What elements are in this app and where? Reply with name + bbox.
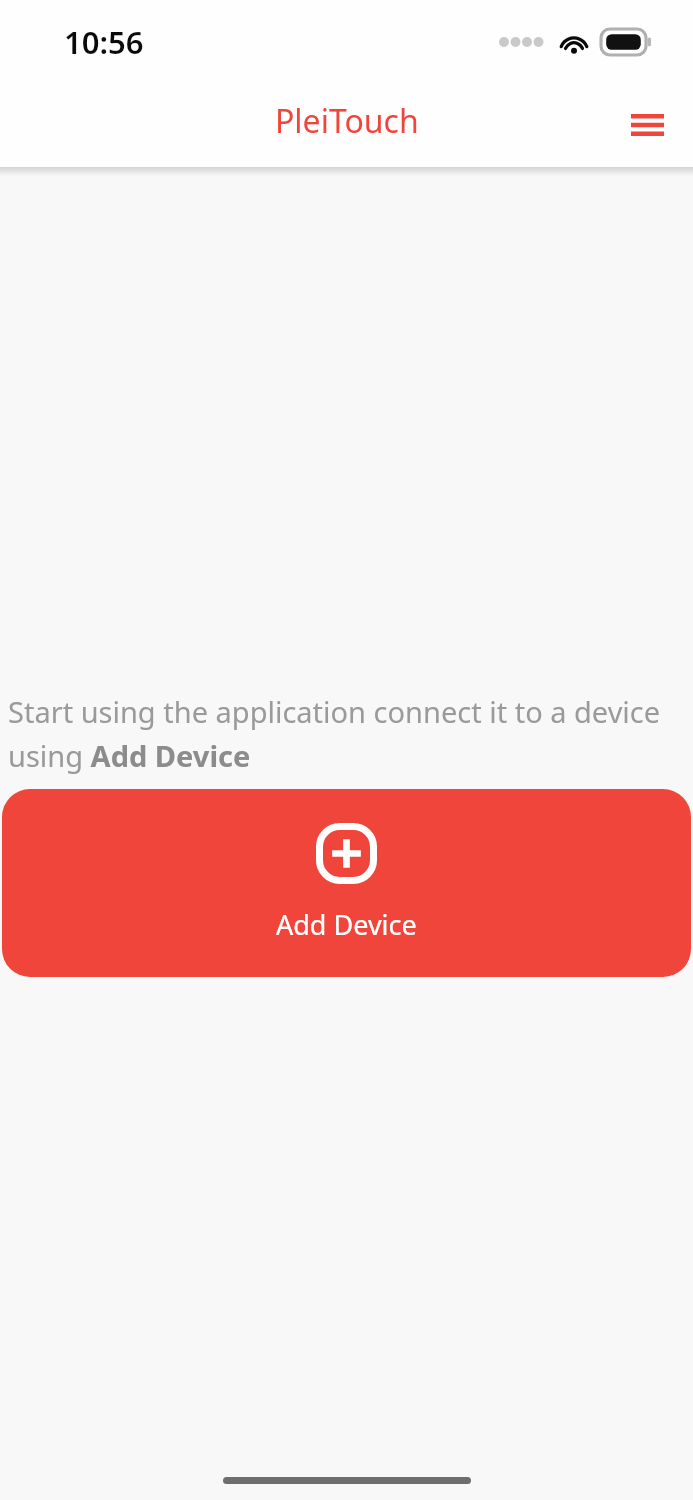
button[interactable]: Add Device <box>2 789 691 977</box>
staticText: PleiTouch <box>275 99 419 143</box>
button[interactable]: Menu <box>615 93 679 157</box>
staticText: Add Device <box>276 906 417 943</box>
staticText: 10:56 <box>64 21 144 63</box>
staticText: Start using the application connect it t… <box>8 692 685 775</box>
